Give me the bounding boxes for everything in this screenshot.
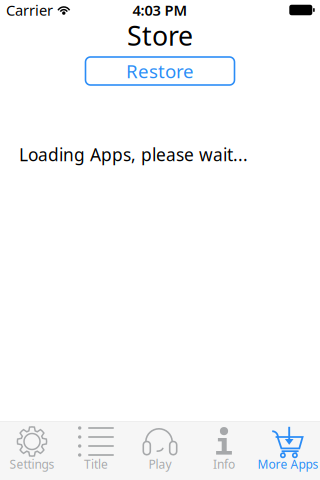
staticText: Title: [84, 456, 108, 472]
button[interactable]: Settings: [0, 421, 64, 480]
button[interactable]: Title: [64, 421, 128, 480]
button[interactable]: Restore: [85, 57, 234, 85]
staticText: Settings: [9, 456, 54, 472]
staticText: 4:03 PM: [132, 0, 187, 20]
staticText: Restore: [126, 59, 194, 83]
staticText: Store: [127, 18, 193, 53]
staticText: Play: [148, 456, 171, 472]
button[interactable]: More Apps: [256, 421, 320, 480]
staticText: Carrier: [6, 0, 53, 20]
button[interactable]: Info: [192, 421, 256, 480]
staticText: Loading Apps, please wait...: [19, 143, 248, 166]
staticText: Info: [213, 456, 235, 472]
staticText: More Apps: [257, 456, 318, 472]
button[interactable]: Play: [128, 421, 192, 480]
